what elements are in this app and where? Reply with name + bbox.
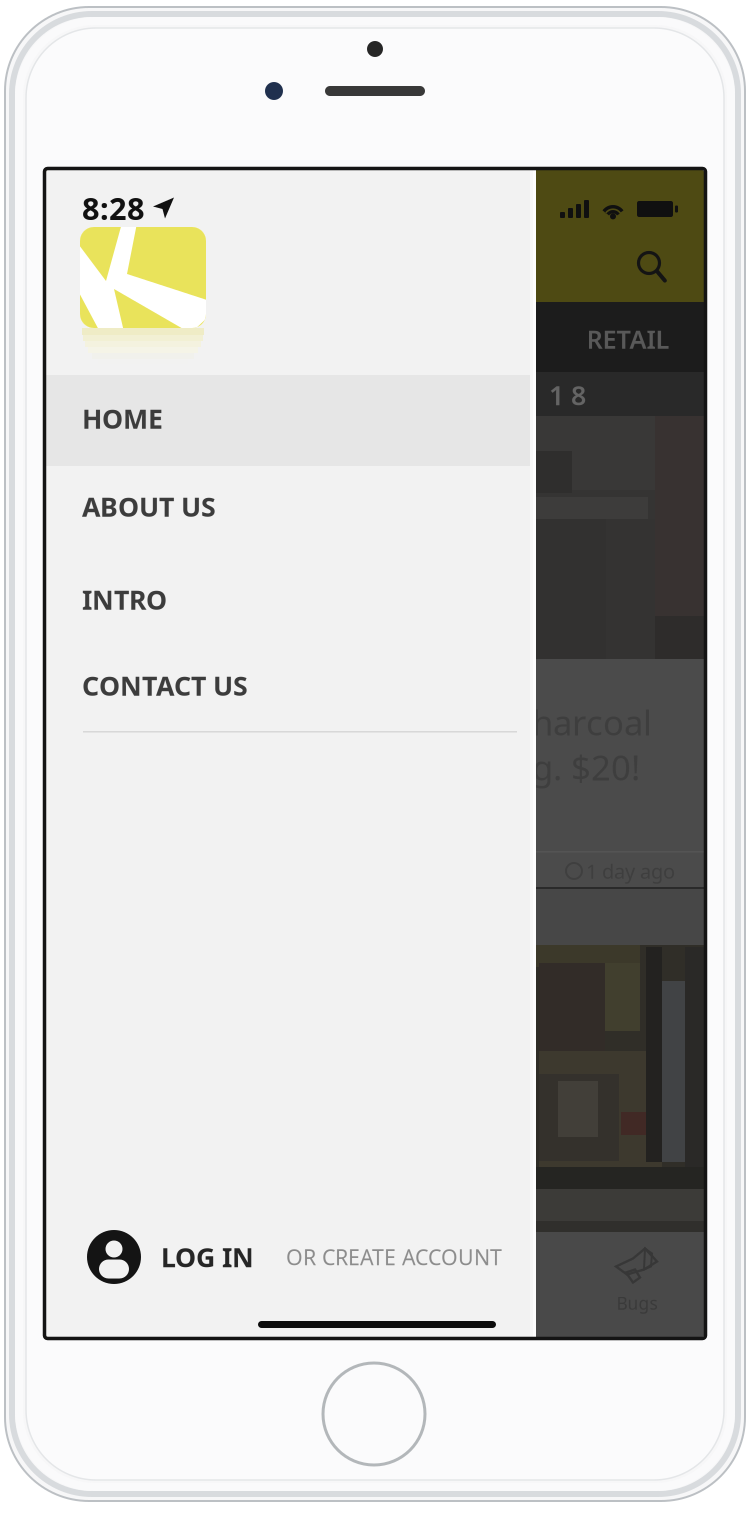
staticText: CONTACT US [82, 668, 248, 703]
staticText: g. $20! [532, 744, 640, 790]
button[interactable]: OR CREATE ACCOUNT [254, 1243, 502, 1271]
button[interactable]: HOME [46, 373, 536, 464]
staticText: RETAIL [586, 322, 669, 356]
staticText: ABOUT US [82, 489, 216, 524]
button[interactable]: Bugs [589, 1240, 685, 1322]
staticText: Bugs [616, 1291, 657, 1314]
button[interactable]: ABOUT US [46, 461, 536, 552]
button[interactable]: LOG IN [87, 1230, 254, 1284]
staticText: INTRO [82, 582, 167, 617]
button[interactable]: CONTACT US [46, 640, 536, 731]
staticText: 1 day ago [586, 858, 675, 884]
button[interactable]: INTRO [46, 554, 536, 645]
staticText: 1 8 [549, 377, 586, 413]
staticText: LOG IN [161, 1239, 254, 1275]
staticText: 8:28 [82, 188, 145, 228]
staticText: HOME [82, 401, 163, 436]
staticText: harcoal [532, 699, 652, 745]
staticText: OR CREATE ACCOUNT [286, 1243, 502, 1271]
